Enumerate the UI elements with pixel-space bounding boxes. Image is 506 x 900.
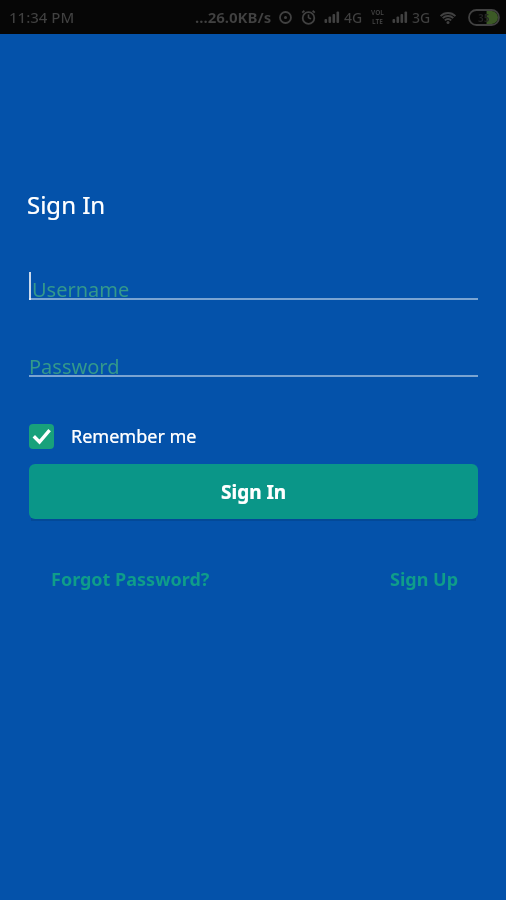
button[interactable]: Remember me — [29, 424, 197, 449]
staticText: 11:34 PM — [9, 7, 75, 27]
button[interactable]: Forgot Password? — [51, 567, 210, 592]
staticText: LTE — [372, 17, 383, 26]
button[interactable]: Sign Up — [390, 567, 459, 592]
staticText: ...26.0KB/s — [195, 7, 272, 27]
staticText: 4G — [344, 8, 363, 27]
button[interactable]: Sign In — [29, 464, 478, 519]
staticText: Remember me — [71, 424, 197, 449]
staticText: 3G — [412, 8, 431, 27]
staticText: Sign In — [221, 479, 287, 505]
staticText: Sign In — [27, 188, 106, 221]
button[interactable]: Password — [29, 353, 120, 380]
button[interactable]: Username — [32, 276, 130, 303]
staticText: 35 — [478, 11, 490, 25]
staticText: VOL — [371, 8, 384, 17]
